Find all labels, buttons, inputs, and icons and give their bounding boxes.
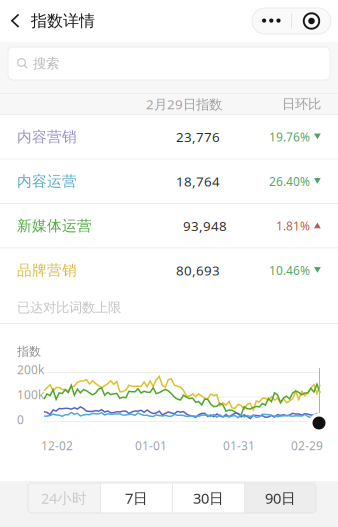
staticText: 品牌营销	[17, 261, 77, 279]
staticText: 10.46%	[269, 262, 310, 278]
button[interactable]: 搜索	[0, 42, 338, 93]
staticText: 指数详情	[31, 11, 95, 31]
button[interactable]: 7日	[101, 483, 172, 513]
staticText: 指数	[17, 344, 41, 359]
button[interactable]: Back	[0, 0, 31, 42]
staticText: 内容运营	[17, 172, 77, 190]
button[interactable]: 90日	[245, 483, 316, 513]
staticText: 23,776	[176, 128, 220, 146]
button[interactable]: 30日	[173, 483, 244, 513]
staticText: 100k	[17, 386, 44, 402]
staticText: 200k	[17, 361, 44, 377]
staticText: 24小时	[41, 488, 87, 508]
staticText: 18,764	[176, 172, 220, 190]
button[interactable]: 24小时	[28, 483, 100, 513]
staticText: 93,948	[183, 217, 227, 235]
button[interactable]: 新媒体运营	[0, 204, 338, 247]
staticText: 搜索	[33, 55, 59, 72]
staticText: 19.76%	[269, 129, 310, 145]
staticText: 90日	[265, 488, 296, 508]
staticText: 26.40%	[269, 173, 310, 189]
staticText: 2月29日指数	[146, 95, 222, 113]
button[interactable]: 内容营销	[0, 115, 338, 158]
staticText: 已达对比词数上限	[17, 299, 121, 316]
button[interactable]: 内容运营	[0, 159, 338, 203]
staticText: 7日	[125, 488, 148, 508]
staticText: 80,693	[176, 261, 220, 279]
button[interactable]: Close	[292, 8, 331, 34]
staticText: 日环比	[282, 96, 321, 112]
button[interactable]: More	[252, 8, 291, 34]
staticText: 01-01	[135, 437, 167, 453]
staticText: 12-02	[41, 437, 73, 453]
staticText: 新媒体运营	[17, 217, 92, 235]
button[interactable]: 品牌营销	[0, 248, 338, 292]
staticText: 内容营销	[17, 128, 77, 146]
staticText: 1.81%	[276, 218, 310, 234]
staticText: 02-29	[291, 437, 323, 453]
staticText: 0	[17, 411, 24, 427]
staticText: 01-31	[223, 437, 255, 453]
staticText: 30日	[193, 488, 224, 508]
